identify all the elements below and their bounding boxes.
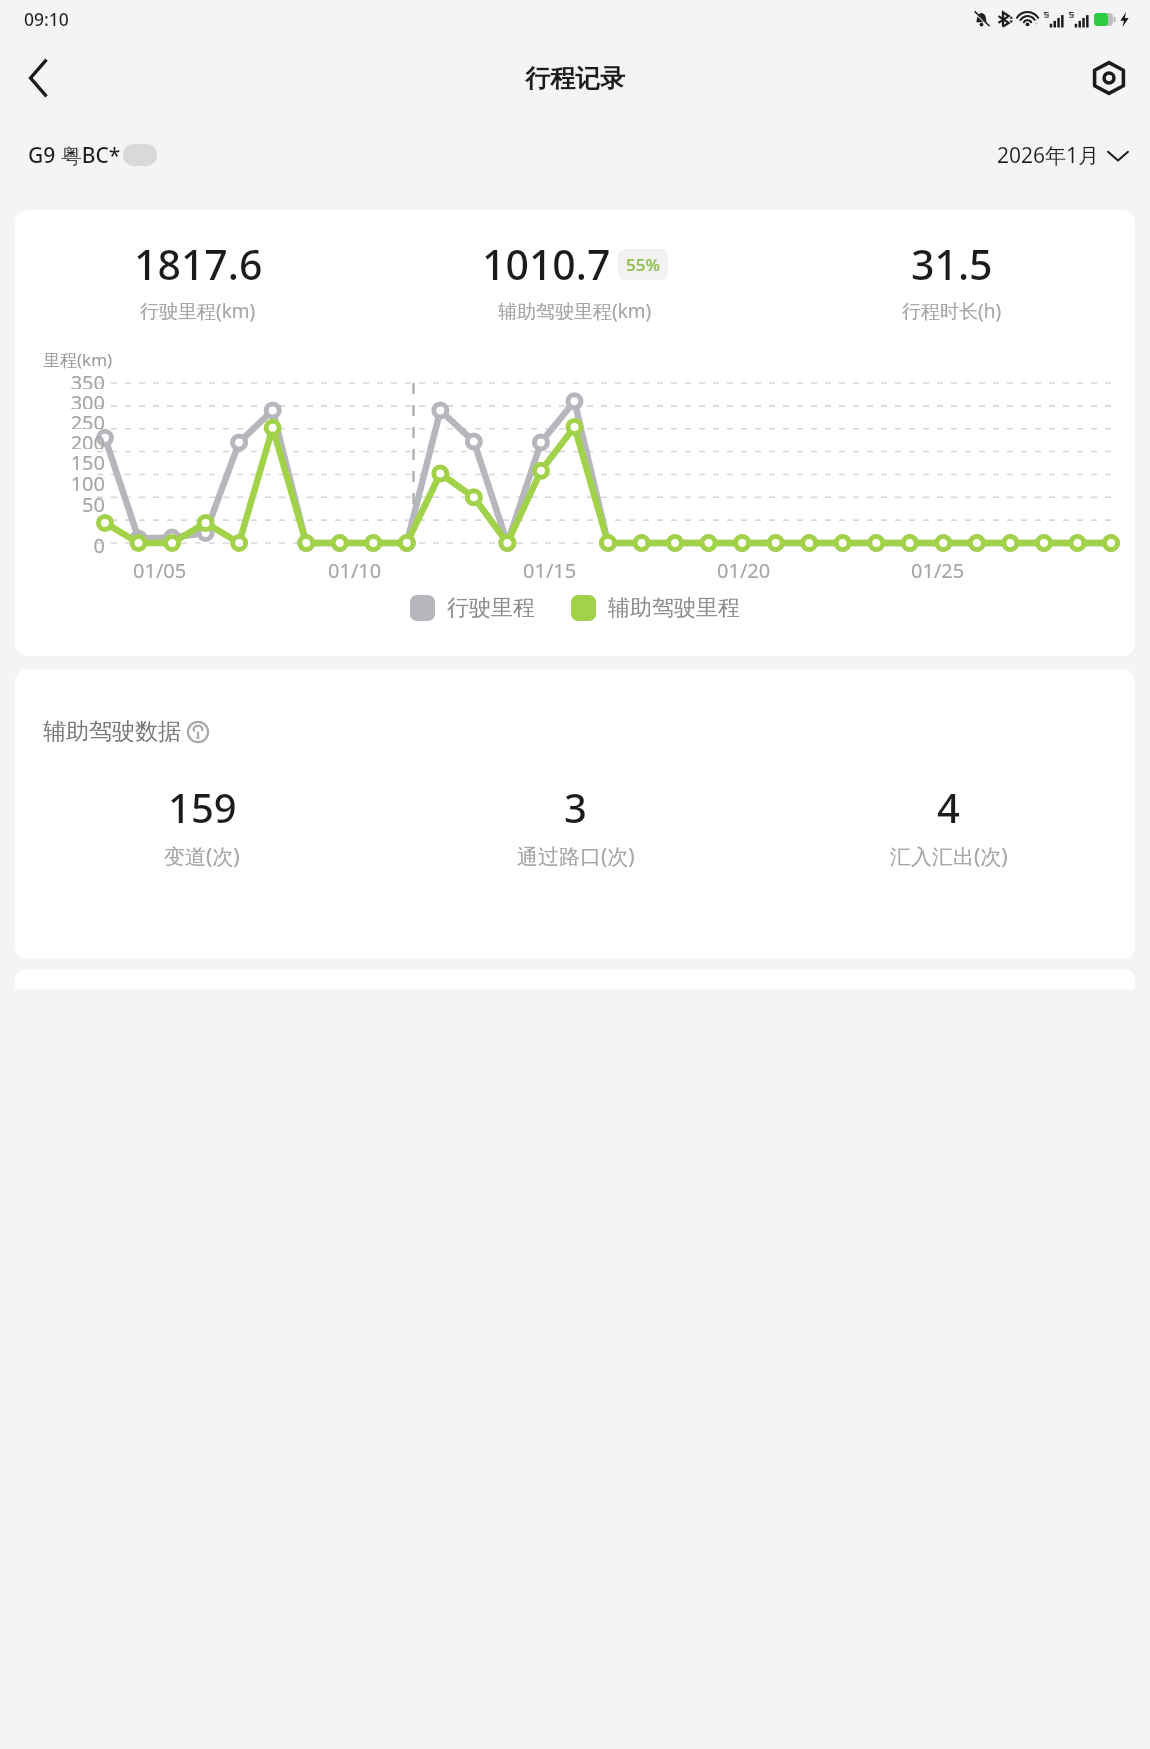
staticText: 100 <box>70 470 105 491</box>
staticText: 150 <box>70 449 105 470</box>
staticText: 250 <box>70 409 105 429</box>
staticText: 300 <box>70 389 105 409</box>
button[interactable]: 2026年1月 <box>997 141 1128 170</box>
staticText: 200 <box>70 429 105 449</box>
staticText: 350 <box>70 369 105 389</box>
button[interactable]: 1817.6 <box>15 236 381 324</box>
button[interactable]: Back <box>10 49 68 107</box>
button[interactable]: 辅助驾驶里程 <box>571 594 740 622</box>
staticText: 行程时长(h) <box>902 298 1002 324</box>
button[interactable]: 辅助驾驶数据 <box>43 717 209 746</box>
staticText: 01/15 <box>523 557 577 584</box>
staticText: 4 <box>937 780 960 834</box>
staticText: 159 <box>168 780 237 834</box>
button[interactable]: G9 粤BC* <box>28 141 157 170</box>
staticText: 里程(km) <box>43 348 113 371</box>
staticText: G9 粤BC* <box>28 141 121 170</box>
staticText: 辅助驾驶里程(km) <box>498 298 652 324</box>
staticText: 31.5 <box>911 236 993 292</box>
button[interactable]: 159 <box>15 780 389 871</box>
staticText: 01/20 <box>717 557 771 584</box>
staticText: 50 <box>82 491 105 512</box>
staticText: 3 <box>564 780 587 834</box>
button[interactable]: 3 <box>389 780 762 871</box>
staticText: 辅助驾驶数据 <box>43 717 181 746</box>
staticText: 行驶里程(km) <box>140 298 256 324</box>
button[interactable]: Settings <box>1080 49 1138 107</box>
staticText: 01/10 <box>328 557 382 584</box>
staticText: 变道(次) <box>164 842 240 871</box>
staticText: 2026年1月 <box>997 141 1100 170</box>
button[interactable]: 行驶里程 <box>410 594 535 622</box>
staticText: 0 <box>93 532 105 553</box>
staticText: 辅助驾驶里程 <box>608 594 740 622</box>
staticText: 行程记录 <box>525 63 625 94</box>
staticText: 09:10 <box>24 7 69 31</box>
staticText: 1010.7 <box>482 236 611 292</box>
button[interactable]: 4 <box>762 780 1135 871</box>
staticText: 55% <box>626 253 660 276</box>
staticText: 01/05 <box>133 557 187 584</box>
staticText: 通过路口(次) <box>517 842 635 871</box>
button[interactable]: 31.5 <box>769 236 1135 324</box>
button[interactable]: 1010.7 <box>381 236 769 324</box>
staticText: 行驶里程 <box>447 594 535 622</box>
staticText: 1817.6 <box>134 236 263 292</box>
staticText: 汇入汇出(次) <box>890 842 1008 871</box>
staticText: 01/25 <box>911 557 965 584</box>
